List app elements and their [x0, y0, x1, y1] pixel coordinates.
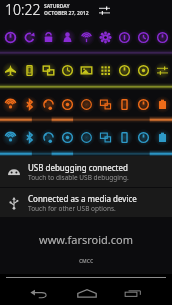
button[interactable]: GPS alt	[58, 121, 77, 154]
button[interactable]: Battery alt	[153, 121, 172, 154]
button[interactable]: Screenshot	[39, 54, 58, 87]
button[interactable]: Wi-Fi	[0, 88, 20, 121]
button[interactable]: Home	[63, 274, 110, 305]
button[interactable]: Flashlight	[134, 88, 153, 121]
button[interactable]: Cast alt	[96, 121, 115, 154]
button[interactable]: GPS	[58, 88, 77, 121]
button[interactable]: Airplane mode	[0, 54, 20, 87]
button[interactable]: Connected as a media device	[0, 188, 172, 217]
button[interactable]: Data	[77, 21, 96, 54]
button[interactable]: Quick settings	[96, 2, 112, 18]
button[interactable]: Battery	[153, 21, 172, 54]
button[interactable]: User	[58, 21, 77, 54]
staticText: Touch to disable USB debugging.	[28, 173, 129, 182]
button[interactable]: Alarm	[134, 21, 153, 54]
button[interactable]: Back	[15, 274, 63, 305]
staticText: Connected as a media device	[28, 193, 137, 204]
button[interactable]: Settings	[96, 21, 115, 54]
button[interactable]: USB debugging connected	[0, 156, 172, 187]
button[interactable]: Cast	[96, 88, 115, 121]
button[interactable]: Wi-Fi alt	[0, 121, 20, 154]
button[interactable]: Location	[77, 88, 96, 121]
button[interactable]: Data alt	[39, 121, 58, 154]
staticText: www.farsroid.com	[0, 232, 172, 247]
staticText: CMCC	[0, 258, 172, 265]
button[interactable]: Recent apps	[110, 274, 157, 305]
button[interactable]: Equalizer	[153, 54, 172, 87]
button[interactable]: Flashlight alt	[134, 121, 153, 154]
button[interactable]: Screen alt	[115, 121, 134, 154]
button[interactable]: Power saver	[115, 54, 134, 87]
button[interactable]: Bluetooth alt	[20, 121, 39, 154]
button[interactable]: Sync	[115, 21, 134, 54]
button[interactable]: Gallery	[77, 54, 96, 87]
staticText: 10:22	[5, 0, 41, 19]
button[interactable]: Screen	[115, 88, 134, 121]
button[interactable]: Lock	[39, 21, 58, 54]
button[interactable]: Power	[0, 21, 20, 54]
button[interactable]: Screen	[20, 54, 39, 87]
staticText: Touch for other USB options.	[28, 204, 116, 213]
button[interactable]: Bluetooth	[20, 88, 39, 121]
button[interactable]: Battery	[153, 88, 172, 121]
button[interactable]: Auto rotate	[20, 21, 39, 54]
staticText: SATURDAY	[44, 3, 70, 10]
button[interactable]: Apps	[96, 54, 115, 87]
button[interactable]: Location alt	[77, 121, 96, 154]
button[interactable]: Brightness	[134, 54, 153, 87]
button[interactable]: Timer	[58, 54, 77, 87]
button[interactable]: Data	[39, 88, 58, 121]
staticText: USB debugging connected	[28, 162, 128, 173]
staticText: OCTOBER 27, 2012	[44, 10, 89, 17]
